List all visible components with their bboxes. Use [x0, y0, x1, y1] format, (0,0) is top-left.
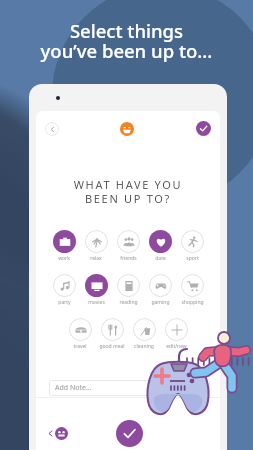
button[interactable]: friends: [112, 230, 144, 262]
staticText: sport: [186, 255, 199, 262]
staticText: date: [155, 255, 166, 262]
button[interactable]: edit/new: [160, 318, 192, 350]
staticText: shopping: [181, 299, 204, 306]
staticText: Add Note...: [55, 383, 92, 393]
staticText: good meal: [99, 343, 125, 350]
staticText: work: [58, 255, 70, 262]
button[interactable]: shopping: [176, 274, 208, 306]
button[interactable]: movies: [80, 274, 112, 306]
button[interactable]: Done: [116, 420, 143, 447]
button[interactable]: relax: [80, 230, 112, 262]
button[interactable]: cleaning: [128, 318, 160, 350]
staticText: friends: [120, 255, 137, 262]
staticText: WHAT HAVE YOU BEEN UP TO?: [36, 177, 220, 206]
button[interactable]: sport: [176, 230, 208, 262]
button[interactable]: Back: [45, 122, 59, 136]
staticText: movies: [88, 299, 105, 306]
button[interactable]: party: [48, 274, 80, 306]
button[interactable]: gaming: [144, 274, 176, 306]
staticText: cleaning: [134, 343, 154, 350]
staticText: reading: [119, 299, 138, 306]
button[interactable]: Mood: [120, 122, 134, 136]
staticText: party: [58, 299, 71, 306]
button[interactable]: reading: [112, 274, 144, 306]
button[interactable]: date: [144, 230, 176, 262]
staticText: travel: [73, 343, 87, 350]
button[interactable]: good meal: [96, 318, 128, 350]
button[interactable]: Confirm: [196, 121, 211, 136]
staticText: Select things you’ve been up to...: [0, 18, 253, 63]
button[interactable]: travel: [64, 318, 96, 350]
button[interactable]: Previous mood: [48, 427, 68, 440]
button[interactable]: Add Note...: [49, 380, 210, 396]
staticText: edit/new: [166, 343, 187, 350]
staticText: gaming: [151, 299, 170, 306]
staticText: relax: [90, 255, 102, 262]
button[interactable]: work: [48, 230, 80, 262]
